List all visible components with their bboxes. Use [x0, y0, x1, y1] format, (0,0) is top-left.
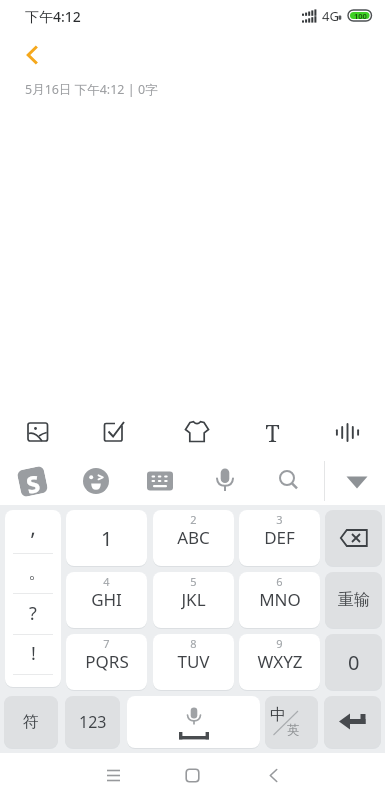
staticText: ABC: [177, 526, 210, 548]
button[interactable]: [127, 696, 260, 748]
staticText: !: [31, 641, 36, 666]
staticText: 5月16日 下午4:12 | 0字: [25, 81, 158, 98]
staticText: DEF: [264, 526, 295, 548]
button[interactable]: [5, 510, 61, 687]
button[interactable]: [239, 572, 320, 628]
button[interactable]: S: [16, 465, 48, 497]
button[interactable]: 123: [65, 696, 120, 748]
button[interactable]: [153, 634, 234, 690]
button[interactable]: [341, 467, 373, 495]
staticText: 100: [354, 11, 367, 21]
button[interactable]: [327, 412, 368, 453]
staticText: 符: [23, 712, 39, 732]
staticText: 9: [276, 636, 283, 651]
button[interactable]: [275, 467, 303, 495]
button[interactable]: [176, 412, 218, 453]
staticText: 重输: [338, 590, 370, 610]
button[interactable]: [153, 572, 234, 628]
button[interactable]: [324, 696, 381, 748]
staticText: 123: [79, 711, 107, 733]
staticText: WXYZ: [257, 650, 303, 672]
staticText: 下午4:12: [25, 7, 81, 25]
staticText: S: [23, 467, 42, 496]
button[interactable]: [325, 510, 382, 566]
staticText: MNO: [259, 588, 301, 610]
button[interactable]: [239, 634, 320, 690]
staticText: 5: [190, 574, 197, 589]
button[interactable]: 符: [4, 696, 58, 748]
button[interactable]: [211, 465, 239, 497]
button[interactable]: 1: [66, 510, 147, 566]
button[interactable]: [177, 760, 208, 791]
staticText: 4G: [322, 7, 339, 25]
staticText: 中: [270, 705, 286, 723]
staticText: 2: [190, 512, 197, 527]
staticText: 1: [101, 525, 113, 552]
button[interactable]: [18, 40, 48, 70]
staticText: T: [265, 417, 280, 448]
staticText: 8: [190, 636, 197, 651]
staticText: TUV: [177, 650, 210, 672]
staticText: 4: [103, 574, 110, 589]
staticText: JKL: [181, 588, 206, 610]
staticText: GHI: [91, 588, 122, 610]
button[interactable]: [66, 572, 147, 628]
staticText: 英: [287, 722, 300, 738]
staticText: ?: [29, 601, 37, 626]
button[interactable]: [146, 468, 174, 494]
staticText: PQRS: [85, 650, 129, 672]
button[interactable]: [66, 634, 147, 690]
staticText: 0: [348, 649, 360, 676]
button[interactable]: [252, 414, 293, 451]
button[interactable]: [239, 510, 320, 566]
button[interactable]: [82, 467, 110, 495]
staticText: 7: [103, 636, 110, 651]
staticText: 3: [276, 512, 283, 527]
button[interactable]: [98, 760, 129, 791]
button[interactable]: [258, 760, 289, 791]
button[interactable]: [95, 412, 136, 453]
staticText: ,: [30, 513, 36, 541]
button[interactable]: 0: [325, 634, 382, 690]
button[interactable]: [18, 412, 59, 453]
staticText: 6: [276, 574, 283, 589]
button[interactable]: [265, 696, 318, 748]
button[interactable]: [153, 510, 234, 566]
button[interactable]: 重输: [325, 572, 382, 628]
staticText: 。: [28, 561, 46, 584]
